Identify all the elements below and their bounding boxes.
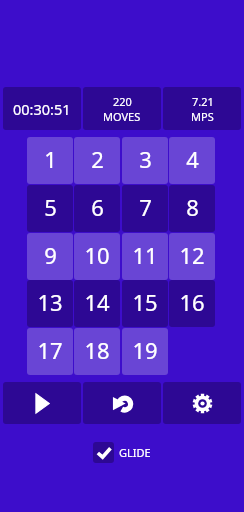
button[interactable]: 17 [27, 328, 73, 375]
button[interactable]: 5 [27, 185, 73, 232]
button[interactable]: 1 [27, 137, 73, 184]
staticText: 4 [186, 144, 199, 174]
button[interactable]: GLIDE [93, 442, 151, 463]
button[interactable]: Play [3, 382, 81, 424]
staticText: 7 [139, 192, 152, 222]
staticText: MOVES [103, 109, 141, 124]
staticText: 14 [84, 287, 110, 317]
staticText: 15 [132, 287, 158, 317]
staticText: MPS [191, 109, 214, 124]
button[interactable]: 13 [27, 280, 73, 327]
button[interactable]: 18 [74, 328, 120, 375]
staticText: 5 [44, 192, 57, 222]
button[interactable]: 8 [169, 185, 215, 232]
button[interactable]: 19 [122, 328, 168, 375]
button[interactable]: 6 [74, 185, 120, 232]
button[interactable]: 4 [169, 137, 215, 184]
staticText: 8 [186, 192, 199, 222]
button[interactable]: 9 [27, 233, 73, 280]
staticText: 2 [91, 144, 104, 174]
staticText: 17 [37, 335, 63, 365]
button[interactable]: 2 [74, 137, 120, 184]
button[interactable]: Replay [83, 382, 161, 424]
staticText: 12 [179, 240, 205, 270]
staticText: 19 [132, 335, 158, 365]
staticText: 11 [132, 240, 158, 270]
staticText: 1 [44, 144, 57, 174]
button[interactable]: 220 [83, 87, 161, 130]
staticText: 10 [84, 240, 110, 270]
staticText: 9 [44, 240, 57, 270]
staticText: 6 [91, 192, 104, 222]
staticText: 18 [84, 335, 110, 365]
button[interactable]: 7.21 [163, 87, 241, 130]
button[interactable]: 16 [169, 280, 215, 327]
staticText: 16 [179, 287, 205, 317]
staticText: GLIDE [119, 445, 151, 460]
button[interactable]: 11 [122, 233, 168, 280]
staticText: 7.21 [192, 94, 214, 109]
button[interactable]: 3 [122, 137, 168, 184]
button[interactable]: 15 [122, 280, 168, 327]
button[interactable]: 7 [122, 185, 168, 232]
staticText: 13 [37, 287, 63, 317]
button[interactable]: 14 [74, 280, 120, 327]
staticText: 220 [113, 94, 132, 109]
button[interactable]: Settings [163, 382, 241, 424]
button[interactable]: 10 [74, 233, 120, 280]
button[interactable]: 12 [169, 233, 215, 280]
staticText: 00:30:51 [13, 99, 71, 119]
button[interactable]: 00:30:51 [3, 87, 81, 130]
staticText: 3 [139, 144, 152, 174]
